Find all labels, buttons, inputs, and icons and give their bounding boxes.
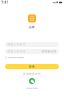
button[interactable]: 我已阅读并同意用户协议和隐私政策	[0, 56, 64, 59]
button[interactable]: 登录	[5, 64, 59, 69]
staticText: 登录	[29, 65, 35, 68]
staticText: 获取验证码	[42, 50, 57, 53]
staticText: 我已阅读并同意用户协议和隐私政策	[8, 57, 24, 58]
staticText: 9:41	[1, 1, 8, 4]
button[interactable]: Sign in with WeChat	[29, 78, 35, 84]
staticText: 其他登录方式	[23, 72, 41, 75]
staticText: 《用户协议》	[32, 87, 38, 89]
staticText: 品牌	[29, 25, 35, 29]
staticText: 请输入验证码	[7, 50, 25, 53]
staticText: 请输入手机号	[7, 43, 25, 46]
